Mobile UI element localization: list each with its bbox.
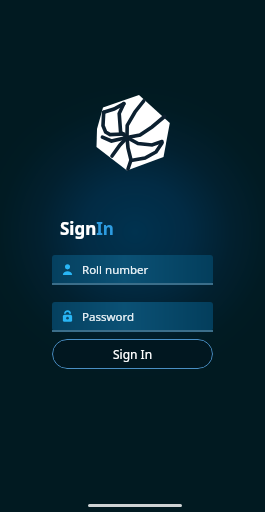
staticText: Roll number xyxy=(82,262,149,278)
staticText: Sign In xyxy=(113,346,153,362)
button[interactable]: Roll number xyxy=(52,255,213,284)
staticText: SignIn xyxy=(60,217,114,240)
button[interactable]: Sign In xyxy=(52,339,213,369)
staticText: Password xyxy=(82,309,135,325)
button[interactable]: Password xyxy=(52,302,213,331)
